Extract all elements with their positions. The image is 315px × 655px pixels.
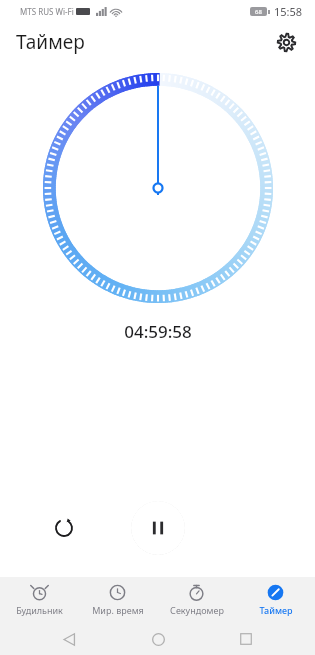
staticText: Таймер — [259, 604, 293, 616]
staticText: Таймер — [16, 29, 85, 55]
button[interactable]: Reset — [42, 506, 86, 550]
staticText: MTS RUS Wi-Fi — [20, 6, 74, 17]
button[interactable]: Таймер — [236, 577, 315, 623]
button[interactable]: Мир. время — [78, 577, 157, 623]
button[interactable]: Pause — [131, 501, 185, 555]
button[interactable]: Settings — [269, 25, 303, 59]
staticText: Секундомер — [170, 604, 224, 616]
button[interactable]: Будильник — [0, 577, 78, 623]
staticText: Будильник — [16, 604, 63, 616]
button[interactable]: Recents — [227, 623, 265, 655]
staticText: Мир. время — [92, 604, 144, 616]
button[interactable]: Back — [50, 623, 88, 655]
staticText: 04:59:58 — [124, 320, 192, 343]
button[interactable]: Секундомер — [157, 577, 236, 623]
button[interactable]: Home — [139, 623, 177, 655]
staticText: 15:58 — [274, 4, 303, 19]
staticText: 68 — [255, 8, 262, 16]
